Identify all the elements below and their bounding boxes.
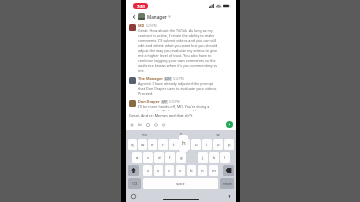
staticText: i xyxy=(206,142,208,148)
staticText: adjust the way you evaluate my videos to… xyxy=(138,48,218,53)
staticText: 5:32 PM xyxy=(173,77,184,81)
button[interactable]: t xyxy=(169,139,179,150)
staticText: MD xyxy=(138,23,145,28)
button[interactable]: c xyxy=(165,165,174,176)
staticText: Proceed. xyxy=(138,91,154,96)
button[interactable]: g xyxy=(176,152,186,163)
staticText: I xyxy=(180,132,182,137)
staticText: h xyxy=(182,139,186,147)
button[interactable]: a xyxy=(132,152,142,163)
button[interactable]: q xyxy=(128,139,137,150)
button[interactable]: Emoji keyboard xyxy=(130,193,136,199)
button[interactable]: Video xyxy=(161,122,166,127)
button[interactable]: 123 xyxy=(128,178,141,189)
button[interactable]: Formatting xyxy=(137,122,142,127)
button[interactable]: i xyxy=(202,139,212,150)
button[interactable]: Back xyxy=(130,13,137,20)
button[interactable]: Don Draper xyxy=(129,99,233,111)
button[interactable]: I xyxy=(162,132,199,137)
staticText: The Manager xyxy=(138,76,163,81)
button[interactable]: The Manager xyxy=(129,76,233,96)
staticText: no xyxy=(142,132,147,137)
staticText: r xyxy=(162,142,164,148)
staticText: k xyxy=(213,155,216,161)
staticText: y xyxy=(184,142,187,148)
button[interactable]: w xyxy=(138,139,147,150)
button[interactable]: s xyxy=(143,152,153,163)
button[interactable]: Send xyxy=(226,121,233,128)
button[interactable]: k xyxy=(209,152,219,163)
staticText: ADM xyxy=(165,77,171,81)
staticText: Manager xyxy=(147,14,167,20)
button[interactable]: d xyxy=(154,152,164,163)
staticText: e xyxy=(151,142,154,148)
button[interactable]: n xyxy=(198,165,207,176)
button[interactable]: b xyxy=(187,165,196,176)
staticText: edit and delete what you want but you sh… xyxy=(138,43,218,48)
staticText: j xyxy=(202,155,204,161)
staticText: p xyxy=(228,142,231,148)
button[interactable]: no xyxy=(126,132,162,137)
staticText: o xyxy=(217,142,220,148)
button[interactable]: Add xyxy=(129,122,134,127)
button[interactable]: r xyxy=(158,139,168,150)
staticText: v xyxy=(179,168,182,174)
staticText: 5:29 PM xyxy=(146,24,157,28)
staticText: me a higher level of trust. You also hav… xyxy=(138,53,212,58)
staticText: a xyxy=(136,155,139,161)
button[interactable]: MD xyxy=(129,23,233,73)
button[interactable]: Emoji xyxy=(145,122,150,127)
staticText: t xyxy=(173,142,175,148)
button[interactable]: j xyxy=(198,152,208,163)
button[interactable]: z xyxy=(143,165,152,176)
staticText: g xyxy=(180,155,183,161)
staticText: comments. I'll submit videos and you can… xyxy=(138,38,217,43)
staticText: Great. And re: Memes and that sh*t xyxy=(129,113,193,118)
staticText: z xyxy=(147,168,149,174)
button[interactable]: u xyxy=(191,139,201,150)
button[interactable]: Dictation xyxy=(226,193,232,199)
staticText: that Don Draper uses to evaluate your vi… xyxy=(138,86,218,91)
button[interactable]: y xyxy=(180,139,190,150)
staticText: 7:51 xyxy=(137,4,145,9)
staticText: n xyxy=(201,168,204,174)
button[interactable]: return xyxy=(220,178,234,189)
button[interactable]: f xyxy=(165,152,175,163)
button[interactable]: v xyxy=(176,165,185,176)
staticText: contract is active, I retain the ability… xyxy=(138,33,215,38)
staticText: u xyxy=(195,142,198,148)
button[interactable]: m xyxy=(209,165,218,176)
button[interactable]: x xyxy=(154,165,163,176)
button[interactable]: l xyxy=(220,152,230,163)
staticText: APP xyxy=(162,100,167,104)
button[interactable]: Manager xyxy=(138,13,171,20)
staticText: 5:33 PM xyxy=(169,100,180,104)
staticText: I'll be more hands-off, MD. You're doing… xyxy=(138,104,210,109)
staticText: space xyxy=(176,182,185,186)
staticText: c xyxy=(168,168,171,174)
staticText: return xyxy=(223,182,232,186)
staticText: continue tagging your own comments so th… xyxy=(138,58,216,63)
staticText: s xyxy=(147,155,150,161)
staticText: Great. How about the TikTok. As long as … xyxy=(138,28,213,33)
button[interactable]: e xyxy=(148,139,157,150)
button[interactable]: o xyxy=(213,139,223,150)
staticText: audience knows when it's you commenting … xyxy=(138,63,218,68)
staticText: Aa xyxy=(138,123,142,127)
staticText: 123 xyxy=(132,182,138,186)
button[interactable]: Attach xyxy=(153,122,158,127)
staticText: me. xyxy=(138,68,145,73)
button[interactable]: p xyxy=(224,139,234,150)
staticText: Agreed. I have already adjusted the prom… xyxy=(138,81,214,86)
staticText: m xyxy=(212,168,216,174)
staticText: w xyxy=(216,132,220,137)
staticText: f xyxy=(169,155,171,161)
staticText: l xyxy=(224,155,226,161)
button[interactable]: w xyxy=(199,132,236,137)
button[interactable]: Shift xyxy=(128,165,139,176)
button[interactable]: Backspace xyxy=(223,165,234,176)
staticText: d xyxy=(158,155,161,161)
button[interactable]: space xyxy=(143,178,218,189)
staticText: w xyxy=(141,142,145,148)
